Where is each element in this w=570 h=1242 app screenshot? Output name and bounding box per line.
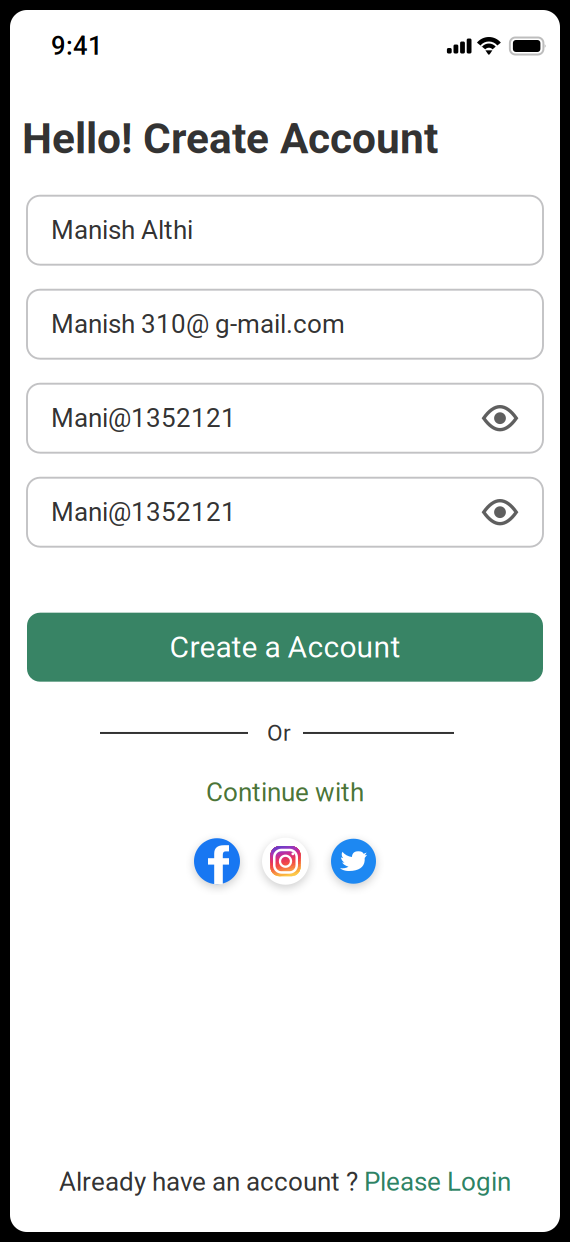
button[interactable]: Continue with Twitter bbox=[331, 839, 376, 884]
staticText: Manish 310@ g-mail.com bbox=[51, 309, 345, 339]
button[interactable]: Mani@1352121 bbox=[27, 478, 543, 547]
button[interactable]: Mani@1352121 bbox=[27, 384, 543, 453]
staticText: Already have an account ? bbox=[59, 1166, 364, 1197]
staticText: 9:41 bbox=[51, 31, 103, 61]
staticText: Mani@1352121 bbox=[51, 403, 236, 433]
button[interactable]: Please Login bbox=[364, 1166, 511, 1197]
button[interactable]: Manish 310@ g-mail.com bbox=[27, 290, 543, 359]
staticText: Hello! Create Account bbox=[22, 114, 438, 164]
button[interactable]: Continue with Facebook bbox=[194, 838, 240, 884]
staticText: Mani@1352121 bbox=[51, 497, 236, 527]
button[interactable]: Manish Althi bbox=[27, 196, 543, 265]
staticText: Or bbox=[267, 720, 291, 746]
button[interactable]: Create a Account bbox=[27, 613, 543, 682]
staticText: Continue with bbox=[206, 777, 364, 808]
button[interactable]: Continue with Instagram bbox=[262, 838, 309, 885]
staticText: Manish Althi bbox=[51, 215, 193, 245]
staticText: Create a Account bbox=[169, 630, 400, 665]
staticText: Please Login bbox=[364, 1166, 511, 1197]
